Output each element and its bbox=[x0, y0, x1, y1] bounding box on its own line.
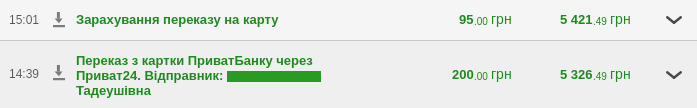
other: Expand bbox=[666, 71, 682, 79]
other: Download receipt bbox=[53, 65, 65, 81]
staticText: 14:39 bbox=[9, 67, 40, 80]
staticText: .49 bbox=[593, 16, 607, 27]
staticText: Переказ з картки ПриватБанку через bbox=[76, 53, 313, 68]
staticText: грн bbox=[491, 11, 512, 27]
staticText: 5 326 bbox=[560, 67, 593, 82]
staticText: грн bbox=[610, 11, 631, 27]
button[interactable]: 14:39 bbox=[0, 41, 697, 108]
staticText: 5 421 bbox=[560, 12, 593, 27]
staticText: .00 bbox=[474, 71, 488, 82]
staticText: грн bbox=[491, 66, 512, 82]
staticText: .00 bbox=[474, 16, 488, 27]
staticText: Тадеушівна bbox=[76, 83, 151, 98]
staticText: грн bbox=[610, 66, 631, 82]
staticText: 15:01 bbox=[9, 13, 40, 26]
staticText: Приват24. Відправник: bbox=[76, 68, 224, 83]
staticText: 200 bbox=[452, 67, 474, 82]
staticText: 95 bbox=[459, 12, 474, 27]
staticText: Зарахування переказу на карту bbox=[76, 12, 279, 27]
button[interactable]: 15:01 bbox=[0, 0, 697, 40]
other: Download receipt bbox=[53, 12, 65, 28]
other: Expand bbox=[666, 16, 682, 24]
staticText: .49 bbox=[593, 71, 607, 82]
